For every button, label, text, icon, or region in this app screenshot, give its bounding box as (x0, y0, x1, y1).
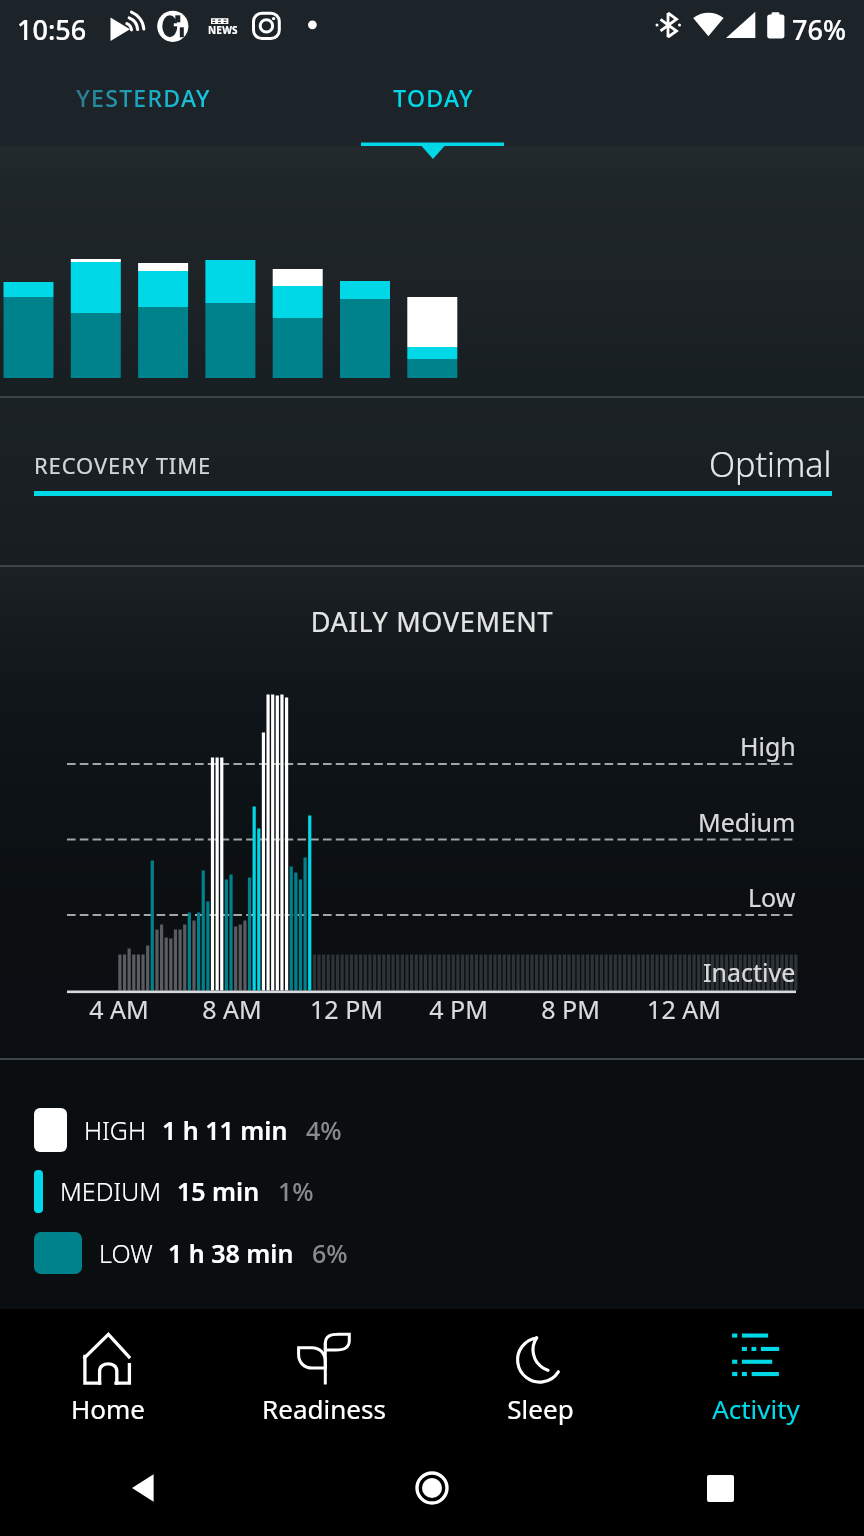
other: Back (129, 1473, 159, 1503)
button[interactable]: YESTERDAY (43, 60, 243, 146)
staticText: HIGH (84, 1113, 147, 1147)
staticText: LOW (99, 1236, 153, 1270)
button[interactable]: Recent apps (576, 1440, 864, 1536)
staticText: 4% (306, 1113, 342, 1147)
staticText: 1 h 38 min (168, 1236, 294, 1270)
button[interactable]: Home (0, 1309, 216, 1440)
staticText: Medium (698, 805, 796, 839)
button[interactable]: Sleep (432, 1309, 648, 1440)
staticText: MEDIUM (60, 1174, 162, 1208)
button[interactable]: RECOVERY TIME (0, 398, 864, 565)
staticText: 4 AM (89, 992, 149, 1026)
other: Recent apps (707, 1475, 734, 1502)
staticText: 8 AM (202, 992, 262, 1026)
button[interactable]: Home (288, 1440, 576, 1536)
staticText: TODAY (393, 82, 474, 113)
button[interactable]: Back (0, 1440, 288, 1536)
staticText: 10:56 (17, 11, 87, 48)
staticText: Readiness (262, 1391, 386, 1426)
staticText: 1% (278, 1174, 314, 1208)
staticText: RECOVERY TIME (34, 450, 212, 480)
staticText: 4 PM (429, 992, 488, 1026)
button[interactable]: Readiness (216, 1309, 432, 1440)
staticText: 1 h 11 min (162, 1113, 288, 1147)
staticText: 8 PM (541, 992, 600, 1026)
staticText: Activity (712, 1391, 800, 1426)
button[interactable]: HIGH (34, 1108, 342, 1152)
staticText: 12 PM (310, 992, 383, 1026)
staticText: 12 AM (647, 992, 721, 1026)
staticText: DAILY MOVEMENT (0, 603, 864, 640)
other: Home (415, 1471, 449, 1505)
staticText: Low (748, 880, 796, 914)
staticText: High (740, 729, 796, 763)
staticText: Inactive (703, 955, 796, 989)
staticText: Home (71, 1391, 145, 1426)
staticText: Sleep (507, 1391, 574, 1426)
staticText: NEWS (208, 23, 238, 37)
staticText: YESTERDAY (76, 82, 211, 113)
staticText: 15 min (177, 1174, 260, 1208)
button[interactable]: LOW (34, 1231, 348, 1275)
button[interactable]: Activity (648, 1309, 864, 1440)
button[interactable]: TODAY (333, 60, 533, 146)
button[interactable]: MEDIUM (34, 1169, 314, 1213)
staticText: 76% (792, 11, 846, 48)
staticText: Optimal (709, 441, 832, 487)
staticText: 6% (312, 1236, 348, 1270)
